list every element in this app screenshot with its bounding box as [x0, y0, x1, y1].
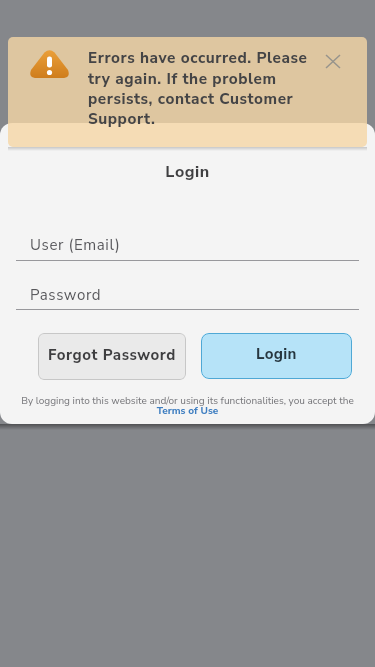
button[interactable]	[320, 49, 346, 75]
button[interactable]: Terms of Use	[0, 404, 375, 418]
staticText: Login	[0, 161, 375, 183]
button[interactable]: Login	[201, 333, 352, 379]
staticText: User (Email)	[30, 235, 121, 255]
staticText: Login	[256, 344, 297, 364]
staticText: Password	[30, 285, 102, 305]
staticText: Errors have occurred. Please try again. …	[88, 48, 308, 130]
button[interactable]: Forgot Password	[38, 333, 186, 380]
staticText: By logging into this website and/or usin…	[0, 394, 375, 408]
staticText: Forgot Password	[48, 345, 176, 365]
